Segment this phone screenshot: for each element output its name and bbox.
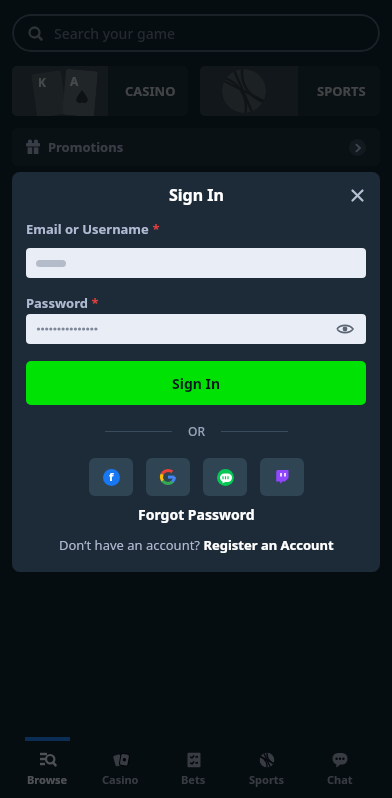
button[interactable] bbox=[342, 180, 372, 210]
button[interactable]: Sports bbox=[230, 737, 303, 798]
staticText: Password bbox=[26, 294, 88, 312]
button[interactable]: Search your game bbox=[12, 14, 380, 52]
button[interactable] bbox=[260, 458, 304, 496]
staticText: SPORTS bbox=[317, 82, 366, 100]
button[interactable]: Don’t have an account? Register an Accou… bbox=[59, 536, 334, 554]
staticText: Chat bbox=[327, 772, 353, 787]
button[interactable]: Browse bbox=[10, 737, 84, 798]
staticText: A bbox=[70, 73, 79, 89]
staticText: Promotions bbox=[48, 138, 124, 156]
button[interactable]: Forgot Password bbox=[138, 505, 255, 524]
button[interactable]: SPORTS bbox=[200, 66, 380, 116]
staticText: * bbox=[149, 220, 160, 238]
staticText: Search your game bbox=[54, 24, 175, 43]
button[interactable]: Bets bbox=[157, 737, 230, 798]
staticText: Casino bbox=[102, 772, 139, 787]
button[interactable] bbox=[26, 248, 366, 278]
staticText: OR bbox=[188, 423, 205, 439]
staticText: Sign In bbox=[172, 374, 221, 393]
button[interactable]: Casino bbox=[84, 737, 157, 798]
staticText: Browse bbox=[27, 772, 68, 787]
staticText: Sign In bbox=[169, 184, 224, 206]
button[interactable] bbox=[146, 458, 190, 496]
staticText: Email or Username bbox=[26, 220, 149, 238]
button[interactable]: Chat bbox=[303, 737, 376, 798]
button[interactable]: Promotions bbox=[12, 128, 380, 166]
staticText: Sports bbox=[249, 772, 285, 787]
button[interactable]: K bbox=[12, 66, 188, 116]
staticText: Bets bbox=[181, 772, 206, 787]
staticText: * bbox=[88, 294, 99, 312]
staticText: f bbox=[109, 469, 114, 484]
button[interactable]: f bbox=[89, 458, 133, 496]
staticText: K bbox=[38, 74, 46, 90]
button[interactable] bbox=[203, 458, 247, 496]
button[interactable] bbox=[26, 314, 366, 344]
button[interactable]: Sign In bbox=[26, 361, 366, 405]
staticText: CASINO bbox=[125, 82, 176, 100]
